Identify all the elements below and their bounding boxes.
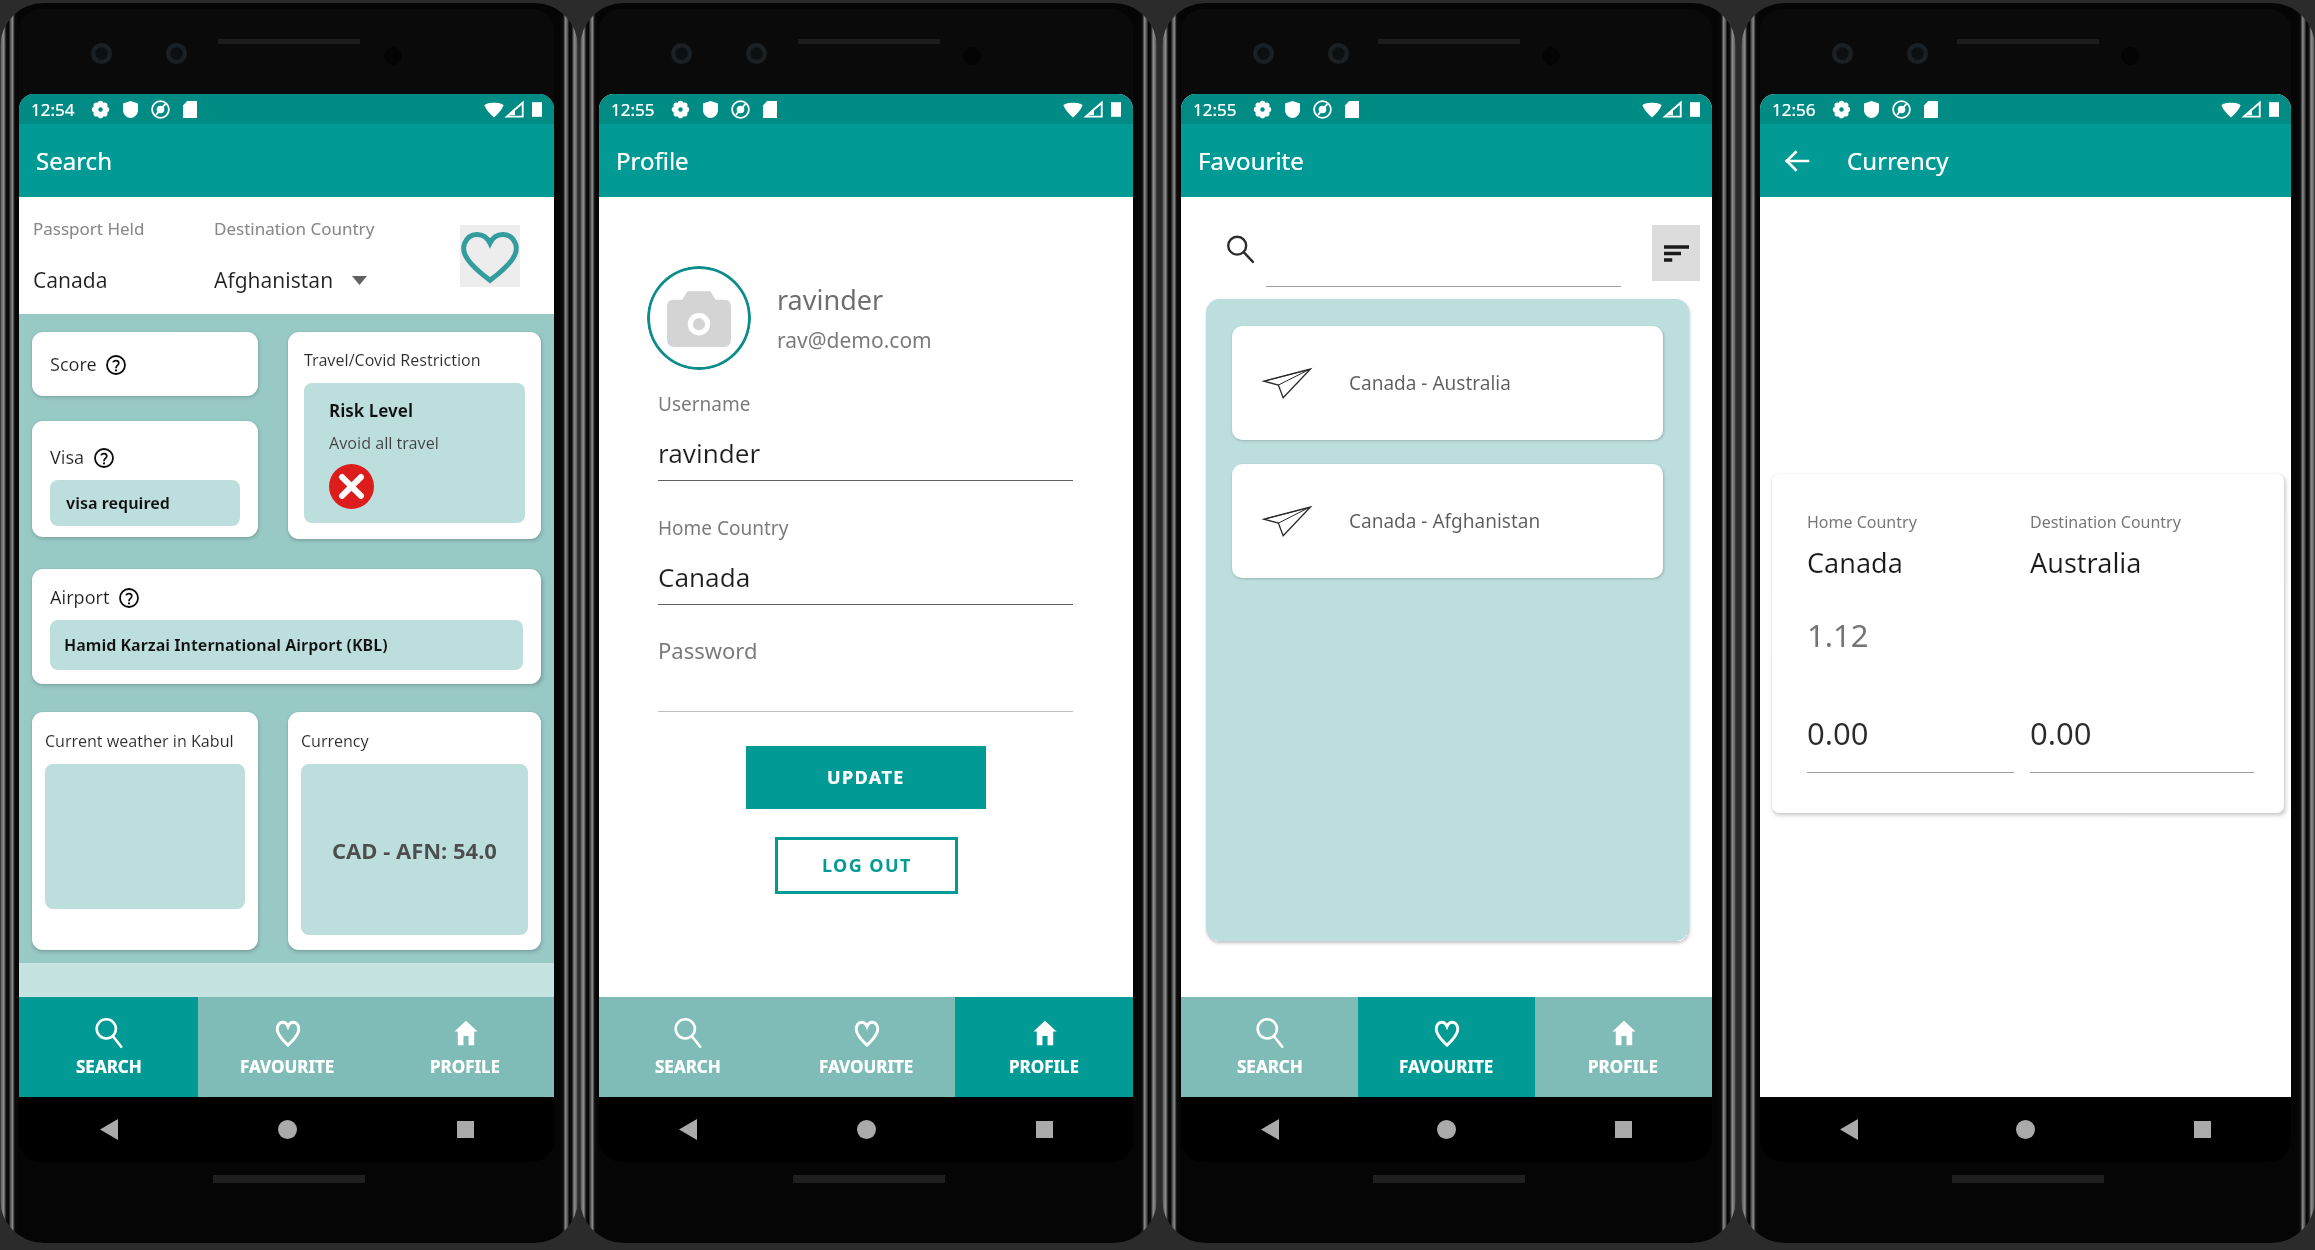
- staticText: Canada - Afghanistan: [1349, 508, 1541, 534]
- staticText: Home Country: [1807, 511, 1917, 533]
- staticText: Search: [36, 144, 112, 177]
- button[interactable]: Canada - Afghanistan: [1232, 464, 1663, 578]
- staticText: Currency: [1847, 144, 1949, 177]
- staticText: Score: [50, 352, 97, 377]
- staticText: Destination Country: [214, 217, 375, 240]
- staticText: Airport: [50, 585, 110, 610]
- staticText: LOG OUT: [822, 853, 912, 878]
- staticText: Visa: [50, 445, 85, 470]
- staticText: Home Country: [658, 515, 789, 541]
- button[interactable]: UPDATE: [746, 746, 986, 809]
- staticText: SEARCH: [655, 1055, 721, 1078]
- button[interactable]: Favourite: [460, 225, 520, 287]
- staticText: 12:56: [1772, 98, 1816, 121]
- staticText: Passport Held: [33, 217, 145, 240]
- button[interactable]: FAVOURITE: [777, 997, 955, 1097]
- staticText: 12:55: [611, 98, 655, 121]
- staticText: Favourite: [1198, 144, 1304, 177]
- staticText: FAVOURITE: [1399, 1055, 1494, 1078]
- staticText: SEARCH: [76, 1055, 142, 1078]
- button[interactable]: Back: [1786, 141, 1817, 181]
- staticText: Travel/Covid Restriction: [304, 349, 481, 371]
- staticText: Hamid Karzai International Airport (KBL): [64, 634, 388, 656]
- button[interactable]: Sort: [1652, 225, 1700, 281]
- button[interactable]: Canada - Australia: [1232, 326, 1663, 440]
- staticText: Afghanistan: [214, 266, 334, 295]
- button[interactable]: FAVOURITE: [1358, 997, 1535, 1097]
- staticText: ravinder: [658, 435, 761, 470]
- staticText: Avoid all travel: [329, 432, 439, 454]
- staticText: 0.00: [2030, 712, 2092, 754]
- staticText: PROFILE: [1588, 1055, 1659, 1078]
- button[interactable]: LOG OUT: [775, 837, 958, 894]
- staticText: ravinder: [777, 281, 884, 318]
- staticText: Australia: [2030, 544, 2142, 581]
- staticText: rav@demo.com: [777, 326, 932, 355]
- button[interactable]: PROFILE: [376, 997, 554, 1097]
- staticText: CAD - AFN: 54.0: [332, 835, 497, 865]
- staticText: SEARCH: [1237, 1055, 1303, 1078]
- button[interactable]: FAVOURITE: [198, 997, 376, 1097]
- staticText: PROFILE: [430, 1055, 501, 1078]
- staticText: FAVOURITE: [240, 1055, 335, 1078]
- staticText: UPDATE: [827, 765, 905, 790]
- staticText: Current weather in Kabul: [45, 730, 234, 752]
- staticText: 1.12: [1807, 614, 1869, 656]
- staticText: Canada - Australia: [1349, 370, 1511, 396]
- staticText: PROFILE: [1009, 1055, 1080, 1078]
- staticText: Username: [658, 391, 751, 417]
- button[interactable]: PROFILE: [1535, 997, 1712, 1097]
- button[interactable]: SEARCH: [19, 997, 198, 1097]
- staticText: 12:54: [31, 98, 75, 121]
- staticText: visa required: [66, 492, 170, 514]
- staticText: FAVOURITE: [819, 1055, 914, 1078]
- staticText: Risk Level: [329, 399, 413, 422]
- staticText: Password: [658, 635, 758, 665]
- staticText: 12:55: [1193, 98, 1237, 121]
- button[interactable]: SEARCH: [1181, 997, 1358, 1097]
- staticText: Canada: [33, 266, 108, 295]
- staticText: Destination Country: [2030, 511, 2181, 533]
- button[interactable]: SEARCH: [599, 997, 777, 1097]
- staticText: Currency: [301, 730, 369, 752]
- staticText: 0.00: [1807, 712, 1869, 754]
- staticText: Profile: [616, 144, 689, 177]
- staticText: Canada: [658, 559, 751, 594]
- button[interactable]: PROFILE: [955, 997, 1133, 1097]
- staticText: Canada: [1807, 544, 1903, 581]
